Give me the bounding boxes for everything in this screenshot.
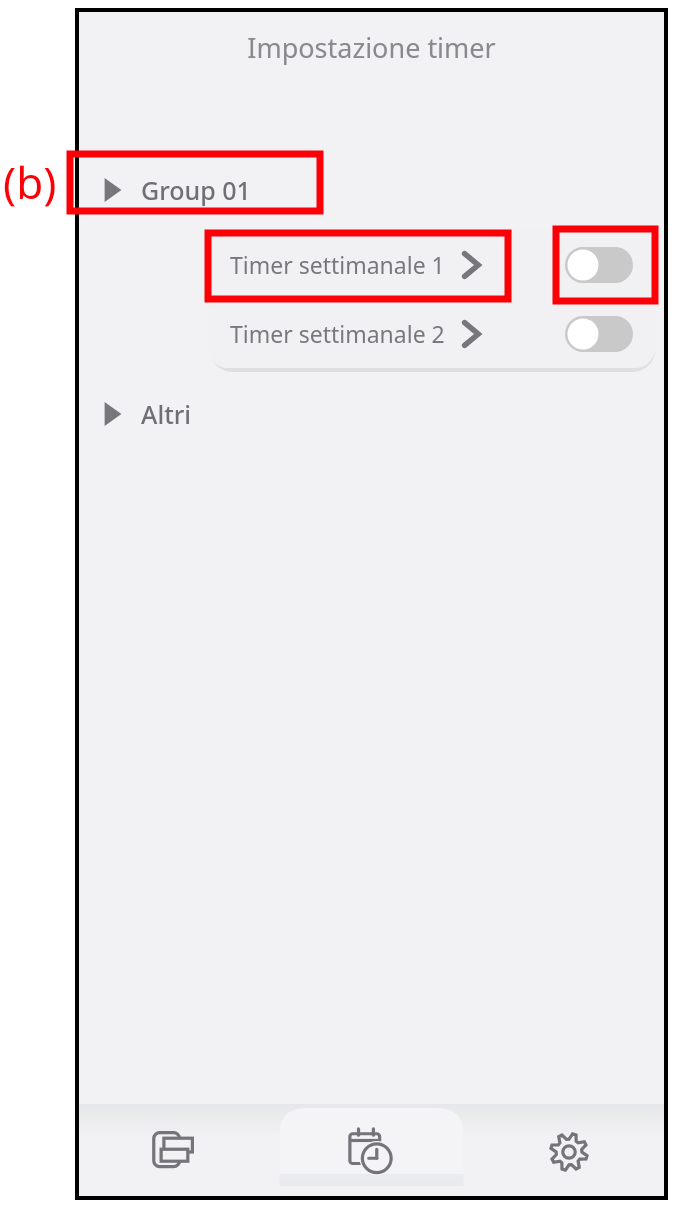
- button[interactable]: Group 01: [75, 161, 668, 219]
- button[interactable]: Timer settimanale 1: [208, 230, 510, 299]
- button[interactable]: Settings: [470, 1104, 668, 1200]
- staticText: Altri: [141, 397, 192, 431]
- button[interactable]: Timer settings: [272, 1104, 470, 1200]
- button[interactable]: Units: [75, 1104, 272, 1200]
- button[interactable]: Altri: [75, 386, 668, 442]
- staticText: Timer settimanale 1: [230, 249, 445, 280]
- staticText: Group 01: [141, 173, 251, 207]
- button[interactable]: Toggle Timer settimanale 1: [565, 247, 633, 283]
- button[interactable]: Toggle Timer settimanale 2: [565, 316, 633, 352]
- staticText: (b): [3, 152, 57, 212]
- staticText: Timer settimanale 2: [230, 318, 445, 349]
- button[interactable]: Timer settimanale 2: [208, 299, 510, 368]
- staticText: Impostazione timer: [247, 29, 496, 66]
